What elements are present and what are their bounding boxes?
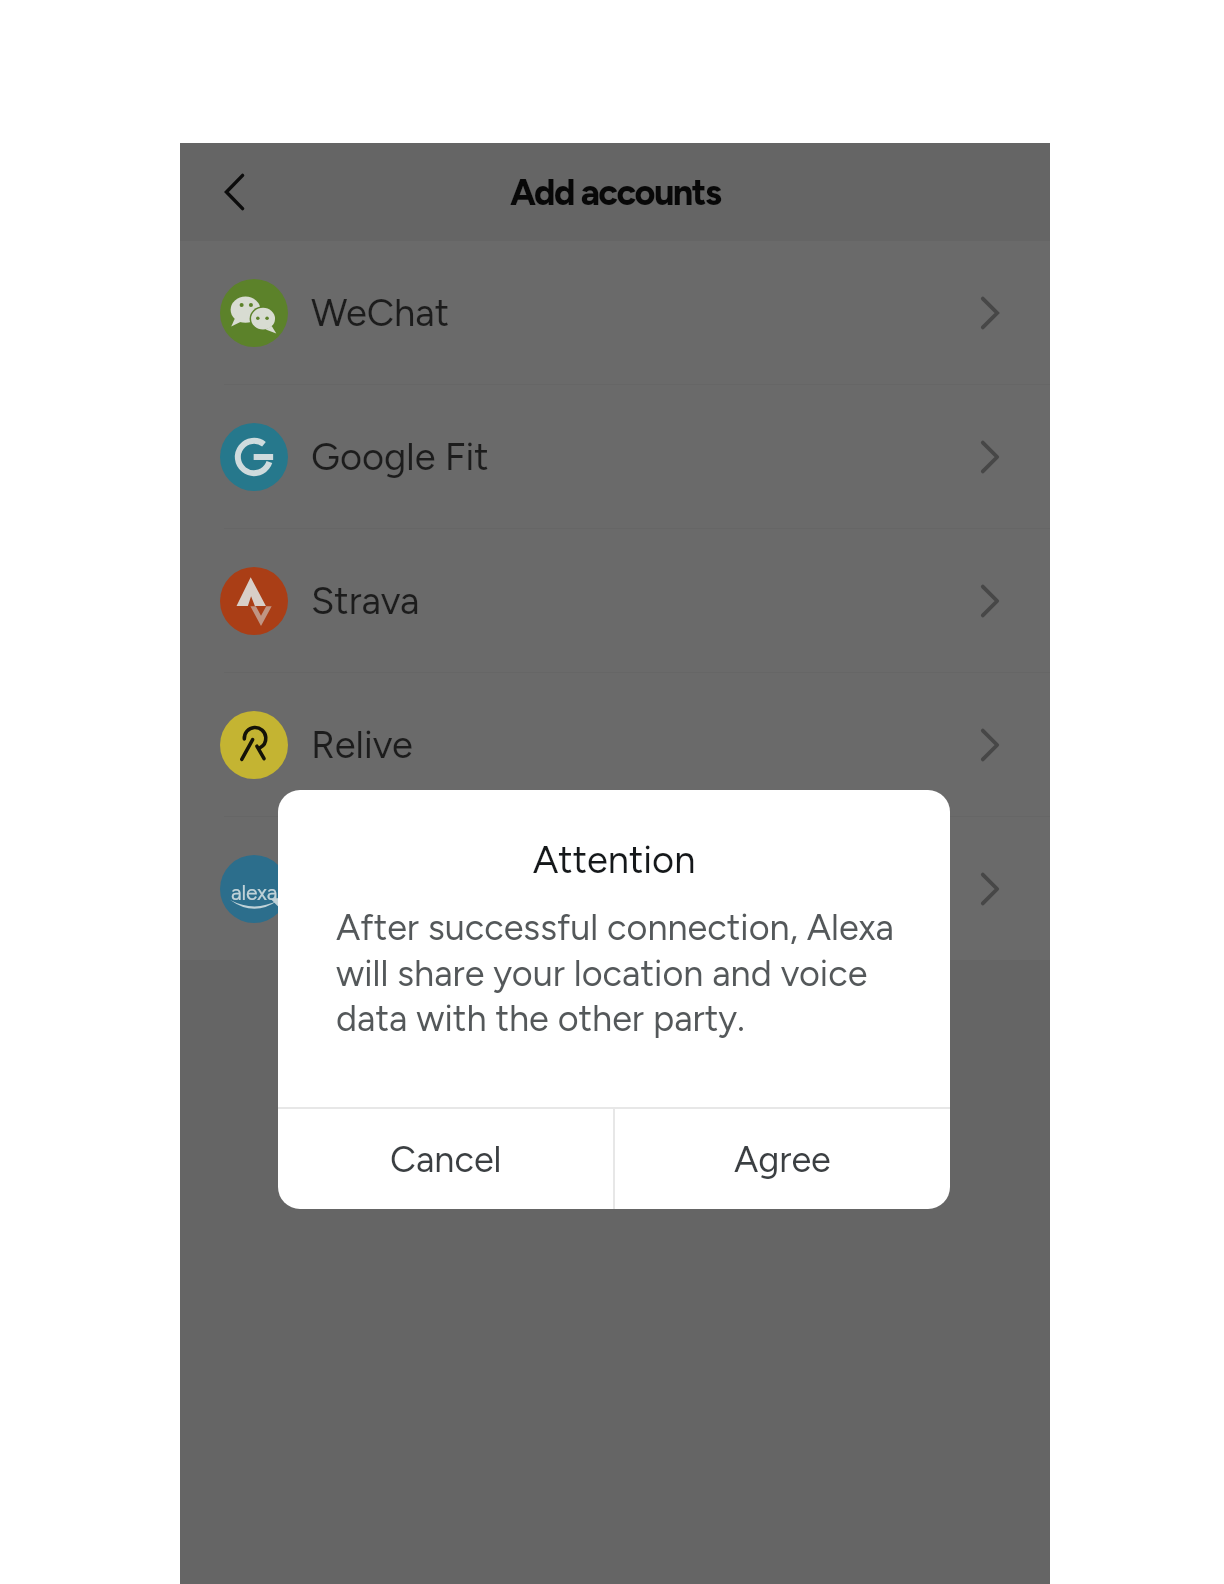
button[interactable]: Cancel (278, 1109, 613, 1209)
staticText: Relive (311, 722, 413, 768)
button[interactable]: Strava (180, 529, 1050, 673)
button[interactable]: Relive (180, 673, 1050, 817)
staticText: Google Fit (311, 434, 489, 480)
button[interactable]: alexa (180, 817, 1050, 960)
staticText: Attention (278, 837, 950, 883)
staticText: Agree (734, 1138, 831, 1181)
button[interactable]: Agree (615, 1109, 950, 1209)
staticText: After successful connection, Alexa will … (336, 906, 912, 1040)
button[interactable]: Back (198, 158, 266, 226)
staticText: Strava (311, 578, 420, 624)
button[interactable]: Google Fit (180, 385, 1050, 529)
staticText: Cancel (390, 1138, 502, 1181)
staticText: alexa (231, 880, 278, 905)
staticText: WeChat (311, 290, 450, 336)
button[interactable]: WeChat (180, 241, 1050, 385)
staticText: Add accounts (510, 171, 721, 214)
